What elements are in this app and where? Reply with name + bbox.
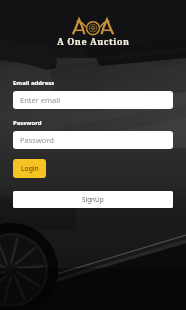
button[interactable]: SignUp xyxy=(13,191,173,208)
button[interactable]: Login xyxy=(13,159,46,178)
staticText: Email address xyxy=(13,79,55,87)
staticText: A One Auction xyxy=(57,35,130,47)
staticText: Enter email xyxy=(20,95,61,105)
staticText: Password xyxy=(13,119,42,127)
button[interactable]: Password xyxy=(13,131,173,149)
staticText: Login xyxy=(21,164,39,173)
staticText: SignUp xyxy=(82,195,104,204)
staticText: Password xyxy=(20,135,54,145)
button[interactable]: Enter email xyxy=(13,91,173,109)
